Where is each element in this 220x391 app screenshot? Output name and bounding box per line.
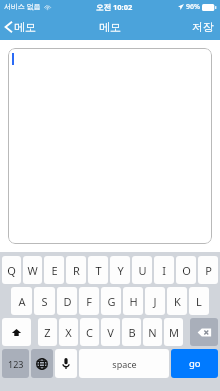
- button[interactable]: 123: [2, 349, 29, 378]
- staticText: go: [189, 357, 201, 370]
- staticText: 96%: [186, 2, 200, 12]
- button[interactable]: D: [57, 287, 77, 315]
- staticText: F: [86, 294, 92, 309]
- staticText: 저장: [192, 20, 214, 34]
- staticText: O: [182, 263, 191, 278]
- button[interactable]: Y: [110, 256, 130, 284]
- staticText: G: [107, 294, 116, 309]
- staticText: I: [162, 263, 166, 278]
- staticText: C: [86, 325, 93, 340]
- staticText: W: [27, 263, 38, 278]
- button[interactable]: Dictate: [55, 349, 77, 378]
- staticText: H: [129, 294, 138, 309]
- staticText: R: [73, 263, 80, 278]
- staticText: T: [95, 263, 102, 278]
- staticText: 메모: [14, 20, 36, 34]
- button[interactable]: 메모: [0, 17, 44, 37]
- button[interactable]: F: [79, 287, 99, 315]
- staticText: K: [174, 294, 181, 309]
- staticText: Y: [117, 263, 124, 278]
- button[interactable]: Shift: [2, 318, 31, 346]
- staticText: V: [107, 325, 114, 340]
- button[interactable]: S: [34, 287, 55, 315]
- button[interactable]: J: [145, 287, 165, 315]
- button[interactable]: X: [59, 318, 78, 346]
- button[interactable]: A: [11, 287, 32, 315]
- staticText: L: [196, 294, 202, 309]
- staticText: P: [205, 263, 212, 278]
- staticText: 서비스 없음: [4, 2, 41, 12]
- button[interactable]: Backspace: [190, 318, 218, 346]
- staticText: D: [63, 294, 72, 309]
- button[interactable]: E: [44, 256, 64, 284]
- button[interactable]: I: [154, 256, 174, 284]
- staticText: E: [51, 263, 58, 278]
- button[interactable]: N: [143, 318, 162, 346]
- staticText: X: [65, 325, 72, 340]
- button[interactable]: Z: [38, 318, 57, 346]
- button[interactable]: P: [198, 256, 218, 284]
- button[interactable]: V: [101, 318, 120, 346]
- staticText: A: [18, 294, 26, 309]
- button[interactable]: H: [123, 287, 143, 315]
- button[interactable]: O: [176, 256, 196, 284]
- button[interactable]: K: [167, 287, 187, 315]
- staticText: 123: [8, 358, 24, 370]
- button[interactable]: go: [171, 349, 218, 378]
- button[interactable]: C: [80, 318, 99, 346]
- button[interactable]: L: [189, 287, 209, 315]
- staticText: space: [112, 358, 137, 370]
- button[interactable]: [8, 48, 212, 244]
- button[interactable]: U: [132, 256, 152, 284]
- staticText: 오전 10:02: [96, 2, 133, 12]
- staticText: N: [148, 325, 157, 340]
- staticText: B: [128, 325, 136, 340]
- staticText: J: [153, 294, 157, 309]
- button[interactable]: R: [66, 256, 86, 284]
- button[interactable]: space: [79, 349, 169, 378]
- button[interactable]: Q: [2, 256, 21, 284]
- button[interactable]: B: [122, 318, 141, 346]
- staticText: Q: [7, 263, 16, 278]
- staticText: M: [169, 325, 179, 340]
- button[interactable]: 저장: [186, 16, 220, 38]
- staticText: Z: [44, 325, 51, 340]
- staticText: U: [138, 263, 147, 278]
- button[interactable]: W: [23, 256, 42, 284]
- button[interactable]: G: [101, 287, 121, 315]
- staticText: 메모: [99, 20, 121, 34]
- button[interactable]: T: [88, 256, 108, 284]
- button[interactable]: Change keyboard language: [31, 349, 53, 378]
- button[interactable]: M: [164, 318, 183, 346]
- staticText: S: [41, 294, 48, 309]
